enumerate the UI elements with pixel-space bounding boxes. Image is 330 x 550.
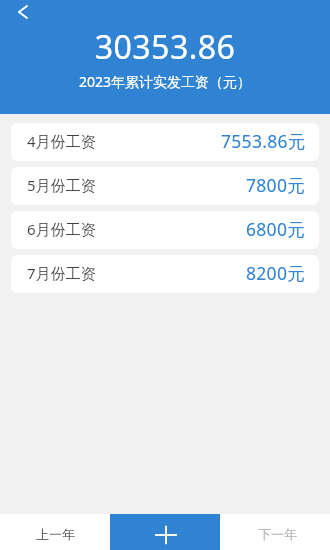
button[interactable]: 7月份工资 — [11, 255, 319, 293]
staticText: 上一年 — [36, 526, 75, 542]
staticText: 5月份工资 — [27, 175, 96, 195]
staticText: 4月份工资 — [27, 131, 96, 151]
staticText: 2023年累计实发工资（元） — [0, 72, 330, 91]
staticText: 30353.86 — [0, 25, 330, 69]
button[interactable]: 下一年 — [220, 514, 330, 550]
staticText: 7月份工资 — [27, 263, 96, 283]
button[interactable]: Back — [9, 0, 37, 26]
button[interactable]: 5月份工资 — [11, 167, 319, 205]
button[interactable]: Add — [110, 514, 220, 550]
staticText: 7553.86元 — [221, 129, 306, 153]
staticText: 6月份工资 — [27, 219, 96, 239]
staticText: 8200元 — [246, 261, 306, 285]
button[interactable]: 上一年 — [0, 514, 110, 550]
button[interactable]: 6月份工资 — [11, 211, 319, 249]
staticText: 下一年 — [258, 526, 297, 542]
button[interactable]: 4月份工资 — [11, 123, 319, 161]
staticText: 7800元 — [246, 173, 306, 197]
staticText: 6800元 — [246, 217, 306, 241]
